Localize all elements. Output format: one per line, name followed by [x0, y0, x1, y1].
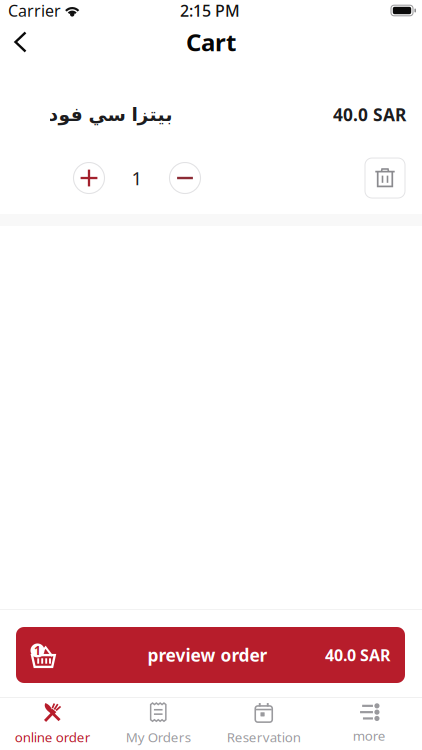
staticText: online order [15, 728, 91, 746]
button[interactable]: preview order [16, 627, 405, 683]
staticText: بيتزا سي فود [48, 104, 172, 125]
staticText: Reservation [227, 728, 301, 746]
button[interactable]: Delete item [365, 158, 405, 198]
button[interactable]: Back [0, 21, 41, 62]
button[interactable]: My Orders [105, 698, 211, 750]
staticText: 1 [131, 166, 142, 190]
staticText: 40.0 SAR [325, 644, 390, 666]
button[interactable]: Reservation [211, 698, 316, 750]
button[interactable]: more [316, 698, 422, 750]
staticText: 2:15 PM [180, 0, 240, 21]
staticText: 1 [34, 642, 41, 658]
staticText: 40.0 SAR [333, 103, 406, 126]
staticText: My Orders [126, 728, 191, 746]
button[interactable]: online order [0, 698, 105, 750]
staticText: Cart [186, 26, 236, 58]
button[interactable]: Decrease quantity [169, 162, 201, 194]
staticText: Carrier [8, 0, 61, 21]
button[interactable]: Increase quantity [73, 162, 105, 194]
staticText: preview order [147, 643, 267, 666]
staticText: more [353, 727, 386, 744]
